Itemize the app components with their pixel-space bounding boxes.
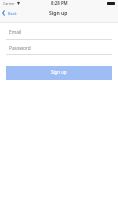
staticText: Carrier	[3, 1, 15, 6]
button[interactable]: Back	[2, 12, 17, 18]
staticText: Password	[9, 45, 31, 52]
staticText: Sign up	[49, 10, 68, 17]
staticText: 8:28 PM	[51, 0, 68, 6]
staticText: Email	[9, 29, 22, 36]
other: Wi-Fi	[17, 2, 20, 5]
button[interactable]: Password	[0, 42, 118, 55]
staticText: Back	[8, 11, 17, 16]
other: Battery	[107, 2, 115, 5]
button[interactable]: Email	[0, 26, 118, 39]
staticText: Sign up	[51, 69, 67, 75]
button[interactable]: Sign up	[6, 66, 112, 80]
